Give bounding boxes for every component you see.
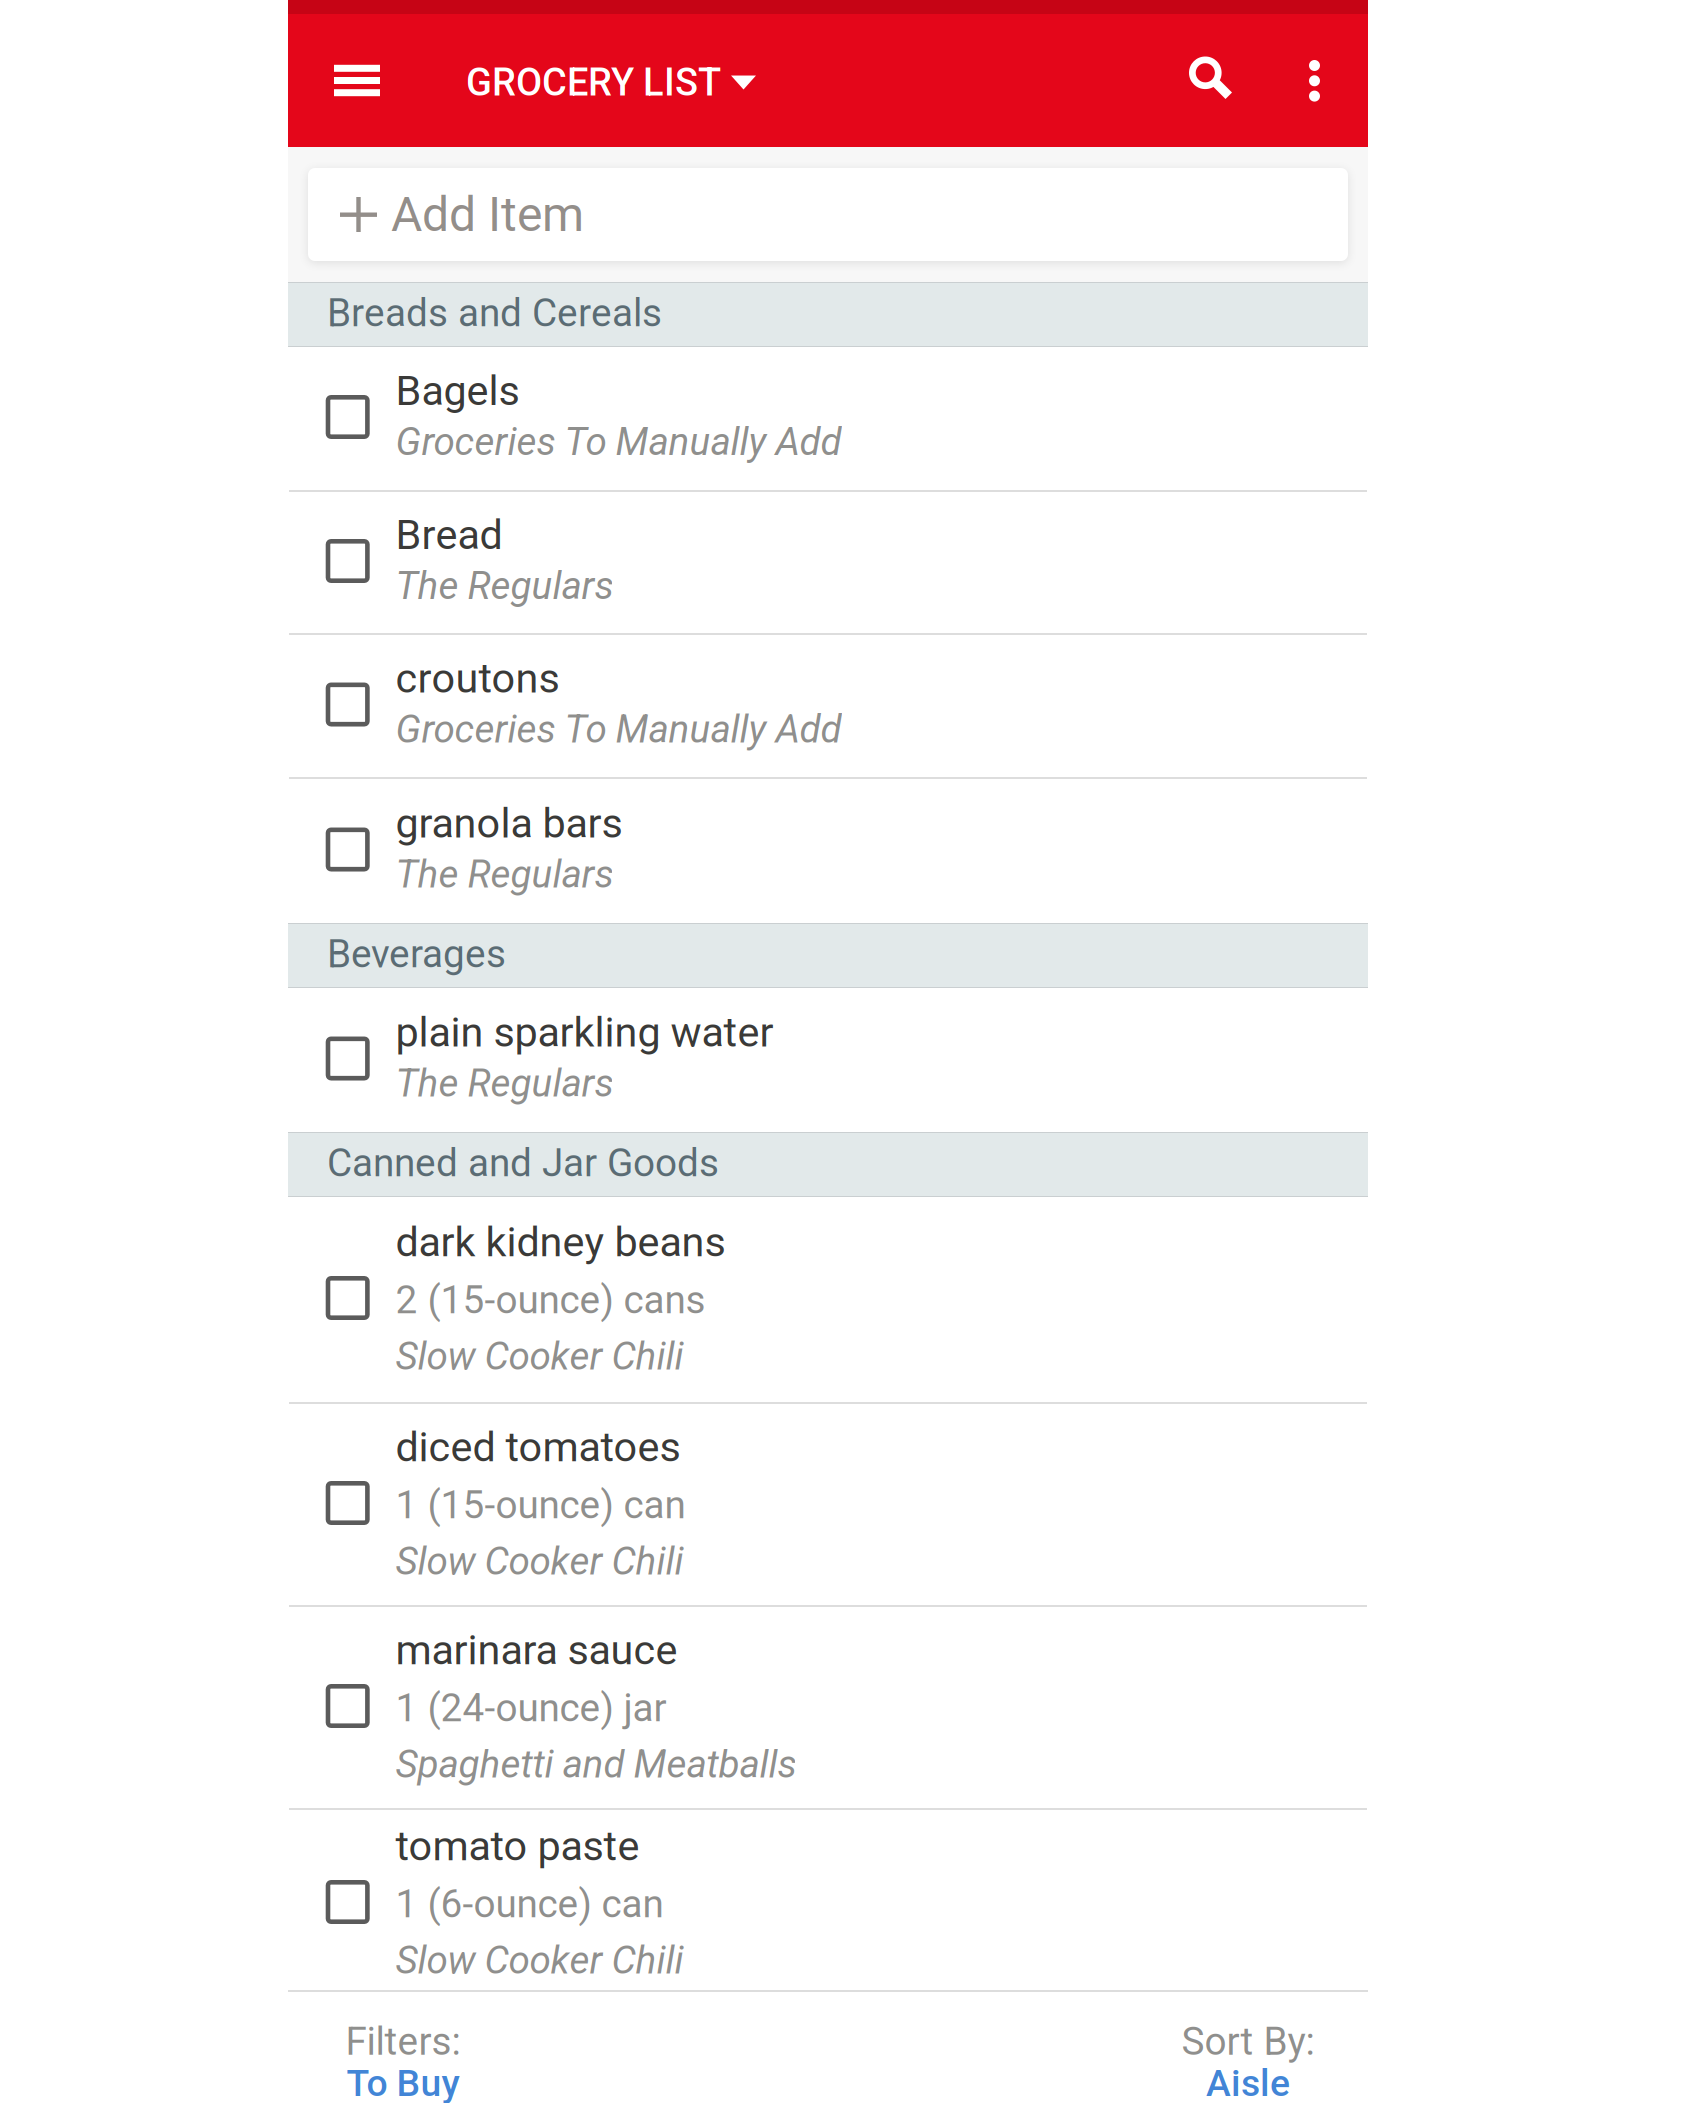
staticText: Slow Cooker Chili xyxy=(395,1334,683,1379)
staticText: granola bars xyxy=(395,799,622,847)
button[interactable]: Bread xyxy=(288,492,1368,633)
staticText: The Regulars xyxy=(395,1061,613,1106)
staticText: croutons xyxy=(395,654,559,702)
staticText: 1 (15-ounce) can xyxy=(395,1482,685,1528)
button[interactable]: marinara sauce xyxy=(288,1607,1368,1808)
staticText: 1 (6-ounce) can xyxy=(395,1881,663,1927)
staticText: To Buy xyxy=(346,2061,459,2103)
staticText: 2 (15-ounce) cans xyxy=(395,1277,705,1323)
staticText: Groceries To Manually Add xyxy=(395,419,841,464)
staticText: Beverages xyxy=(327,931,506,977)
button[interactable]: Menu xyxy=(288,14,423,147)
staticText: The Regulars xyxy=(395,563,613,608)
button[interactable]: Search xyxy=(1130,14,1236,147)
button[interactable]: plain sparkling water xyxy=(288,988,1368,1132)
staticText: dark kidney beans xyxy=(395,1218,725,1266)
staticText: Groceries To Manually Add xyxy=(395,707,841,752)
staticText: Bagels xyxy=(395,367,519,415)
button[interactable]: Filters: xyxy=(288,1992,518,2103)
button[interactable]: dark kidney beans xyxy=(288,1197,1368,1402)
staticText: The Regulars xyxy=(395,852,613,897)
staticText: Add Item xyxy=(391,186,584,243)
staticText: 1 (24-ounce) jar xyxy=(395,1685,666,1731)
staticText: plain sparkling water xyxy=(395,1008,773,1056)
button[interactable]: tomato paste xyxy=(288,1810,1368,1990)
button[interactable]: More options xyxy=(1236,14,1368,147)
staticText: Breads and Cereals xyxy=(327,290,662,336)
button[interactable]: Add Item xyxy=(308,168,1348,261)
button[interactable]: croutons xyxy=(288,635,1368,777)
button[interactable]: diced tomatoes xyxy=(288,1404,1368,1605)
staticText: Sort By: xyxy=(1181,2019,1314,2064)
staticText: marinara sauce xyxy=(395,1626,677,1674)
staticText: GROCERY LIST xyxy=(466,60,721,105)
staticText: Bread xyxy=(395,511,502,559)
staticText: tomato paste xyxy=(395,1822,639,1870)
staticText: Slow Cooker Chili xyxy=(395,1938,683,1983)
button[interactable]: granola bars xyxy=(288,779,1368,923)
staticText: diced tomatoes xyxy=(395,1423,680,1471)
staticText: Spaghetti and Meatballs xyxy=(395,1742,796,1787)
staticText: Aisle xyxy=(1206,2061,1290,2103)
button[interactable]: Sort By: xyxy=(1133,1992,1368,2103)
button[interactable]: Bagels xyxy=(288,347,1368,490)
staticText: Filters: xyxy=(345,2019,460,2064)
button[interactable]: GROCERY LIST xyxy=(423,14,772,147)
staticText: Slow Cooker Chili xyxy=(395,1539,683,1584)
staticText: Canned and Jar Goods xyxy=(327,1140,719,1186)
